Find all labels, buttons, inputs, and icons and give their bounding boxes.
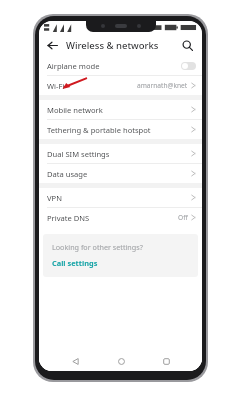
- button[interactable]: Back: [43, 36, 61, 54]
- staticText: Data usage: [47, 169, 88, 179]
- staticText: Mobile network: [47, 105, 103, 115]
- button[interactable]: Mobile network: [39, 100, 202, 119]
- button[interactable]: Airplane mode: [39, 56, 202, 75]
- button[interactable]: VPN: [39, 188, 202, 207]
- staticText: Call settings: [52, 258, 98, 268]
- staticText: Wi-Fi: [47, 81, 65, 91]
- staticText: Dual SIM settings: [47, 149, 110, 159]
- staticText: Wireless & networks: [66, 39, 159, 52]
- staticText: Airplane mode: [47, 61, 100, 71]
- button[interactable]: Airplane mode toggle: [181, 62, 196, 70]
- button[interactable]: Search: [178, 36, 196, 54]
- staticText: Looking for other settings?: [52, 242, 143, 252]
- staticText: amarnath@knet: [137, 81, 188, 90]
- button[interactable]: Call settings: [52, 258, 98, 268]
- button[interactable]: Tethering & portable hotspot: [39, 120, 202, 139]
- staticText: VPN: [47, 193, 62, 203]
- button[interactable]: Data usage: [39, 164, 202, 183]
- button[interactable]: Back: [65, 351, 85, 371]
- button[interactable]: Recent apps: [156, 351, 176, 371]
- staticText: Tethering & portable hotspot: [47, 125, 151, 135]
- button[interactable]: Wi-Fi: [39, 76, 202, 95]
- staticText: Private DNS: [47, 213, 90, 223]
- staticText: Off: [178, 213, 188, 222]
- button[interactable]: Private DNS: [39, 208, 202, 227]
- button[interactable]: Dual SIM settings: [39, 144, 202, 163]
- button[interactable]: Home: [111, 351, 131, 371]
